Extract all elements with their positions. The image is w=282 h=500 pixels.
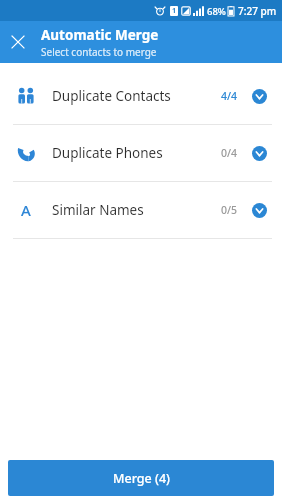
staticText: 0/5	[221, 203, 238, 217]
button[interactable]: Expand Similar Names	[248, 199, 270, 221]
staticText: Duplicate Phones	[52, 144, 221, 162]
staticText: 4/4	[221, 89, 238, 103]
button[interactable]: Expand Duplicate Phones	[248, 142, 270, 164]
staticText: 0/4	[221, 146, 238, 160]
staticText: A	[21, 200, 31, 220]
staticText: Duplicate Contacts	[52, 87, 221, 105]
staticText: 68%	[207, 5, 226, 18]
button[interactable]: Duplicate Contacts	[0, 68, 282, 124]
staticText: 1	[172, 6, 177, 16]
staticText: Merge (4)	[113, 470, 170, 487]
button[interactable]: Expand Duplicate Contacts	[248, 85, 270, 107]
staticText: 7:27 pm	[238, 4, 277, 18]
button[interactable]: A	[0, 182, 282, 238]
button[interactable]: Close	[5, 29, 31, 55]
button[interactable]: Duplicate Phones	[0, 125, 282, 181]
staticText: Similar Names	[52, 201, 221, 219]
staticText: Select contacts to merge	[41, 45, 157, 59]
button[interactable]: Merge (4)	[8, 460, 274, 496]
staticText: Automatic Merge	[41, 26, 159, 44]
